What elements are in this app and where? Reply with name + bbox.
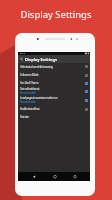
staticText: Full-screen Mode [20, 73, 39, 77]
button[interactable]: Home [49, 172, 61, 181]
button[interactable]: Back [18, 55, 25, 63]
staticText: Hide status bar while browsing [20, 65, 53, 69]
button[interactable]: Use Dark Theme [18, 79, 90, 87]
button[interactable]: Text size [18, 113, 90, 121]
staticText: Recommended [20, 100, 36, 104]
button[interactable]: Hide status bar while browsing [18, 62, 90, 71]
button[interactable]: Back [28, 172, 40, 181]
staticText: Text size [20, 115, 29, 119]
staticText: Load pages in overview mode mm [20, 96, 58, 100]
button[interactable]: Full-screen Mode [18, 71, 90, 79]
staticText: Enable text reflow [20, 107, 40, 111]
staticText: Text with strikeout [20, 87, 40, 91]
staticText: Display Settings [0, 8, 112, 21]
button[interactable]: Text with strikeout [18, 87, 90, 95]
button[interactable]: Load pages in overview mode mm [18, 95, 90, 105]
button[interactable]: Enable text reflow [18, 105, 90, 113]
button[interactable]: Back [18, 55, 90, 63]
button[interactable]: Recent apps [69, 172, 81, 181]
staticText: Use Dark Theme [20, 81, 39, 85]
staticText: Recommended [20, 91, 36, 95]
staticText: Display Settings [25, 57, 57, 62]
